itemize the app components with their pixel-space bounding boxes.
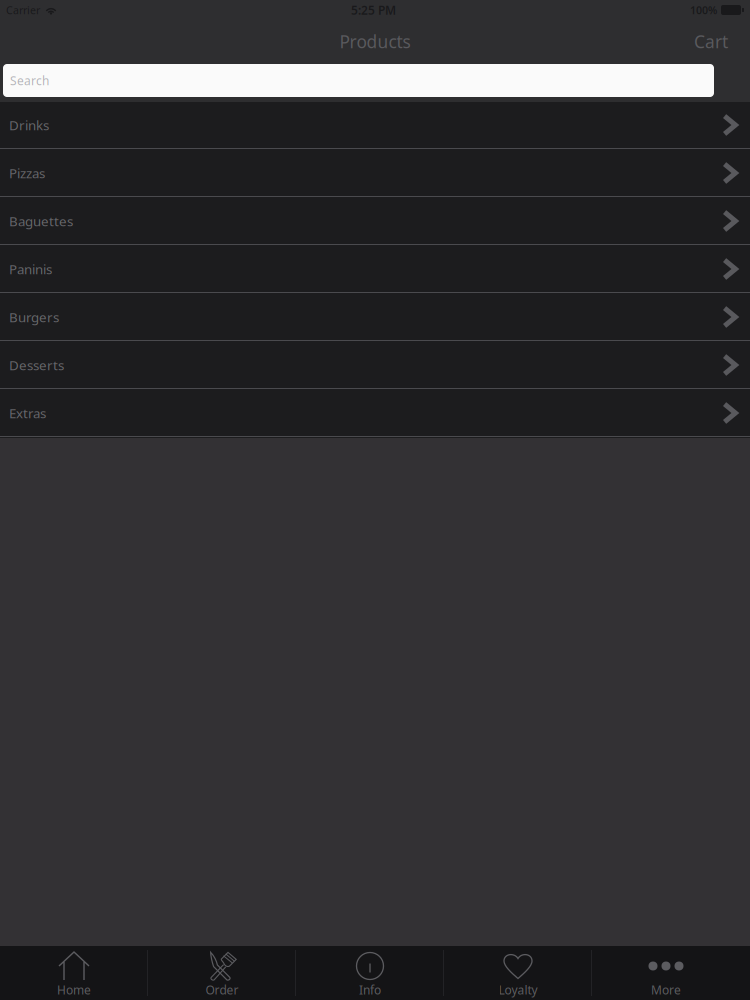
button[interactable]: Desserts	[0, 342, 750, 390]
staticText: 5:25 PM	[351, 2, 396, 18]
button[interactable]: Extras	[0, 390, 750, 438]
button[interactable]: Baguettes	[0, 198, 750, 246]
staticText: Loyalty	[498, 982, 537, 998]
button[interactable]: Cart	[680, 21, 750, 61]
staticText: Baguettes	[9, 212, 73, 230]
staticText: Extras	[9, 404, 46, 422]
staticText: Paninis	[9, 260, 52, 278]
button[interactable]: Drinks	[0, 102, 750, 150]
button[interactable]: Loyalty	[444, 946, 592, 1000]
staticText: Search	[10, 72, 49, 88]
staticText: Drinks	[9, 116, 49, 134]
staticText: Carrier	[6, 3, 40, 17]
staticText: More	[651, 982, 681, 998]
staticText: Products	[339, 30, 410, 53]
staticText: Info	[359, 982, 381, 998]
button[interactable]: Burgers	[0, 294, 750, 342]
button[interactable]: Order	[148, 946, 296, 1000]
staticText: Pizzas	[9, 164, 45, 182]
button[interactable]: Pizzas	[0, 150, 750, 198]
button[interactable]: Home	[0, 946, 148, 1000]
button[interactable]: More	[592, 946, 740, 1000]
button[interactable]: Paninis	[0, 246, 750, 294]
button[interactable]: Info	[296, 946, 444, 1000]
staticText: Cart	[694, 30, 728, 53]
staticText: Order	[205, 982, 238, 998]
staticText: 100%	[690, 3, 717, 17]
staticText: Home	[57, 982, 91, 998]
staticText: Burgers	[9, 308, 59, 326]
staticText: Desserts	[9, 356, 64, 374]
